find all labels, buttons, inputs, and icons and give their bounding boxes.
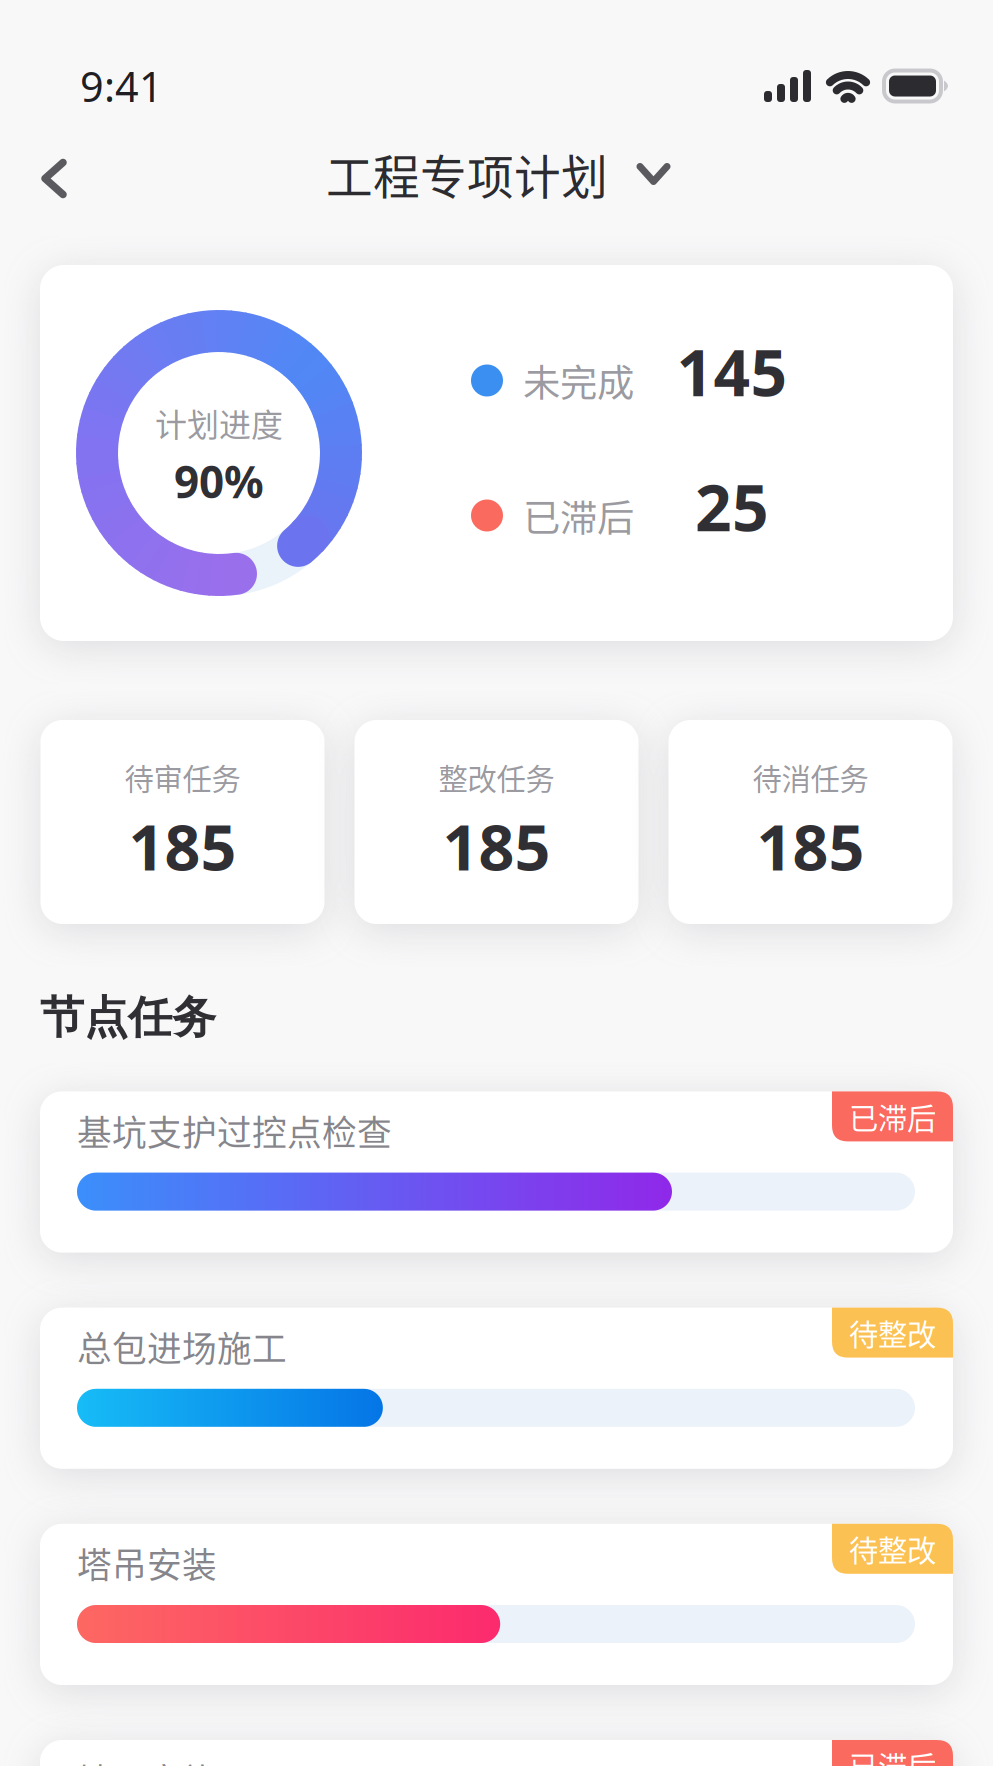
staticText: 地下室施工 [77,1754,252,1766]
staticText: 节点任务 [40,990,216,1045]
staticText: 已滞后 [849,1095,936,1138]
button[interactable]: 基坑支护过控点检查 [40,1091,953,1253]
staticText: 185 [756,804,864,888]
staticText: 145 [676,329,787,414]
button[interactable]: 塔吊安装 [40,1524,953,1685]
staticText: 185 [442,804,550,888]
staticText: 工程专项计划 [326,140,608,208]
staticText: 185 [128,804,236,888]
staticText: 90% [174,452,264,510]
staticText: 基坑支护过控点检查 [77,1105,392,1156]
staticText: 已滞后 [523,488,634,543]
staticText: 待消任务 [752,756,868,798]
button[interactable]: 待消任务 [668,720,952,924]
staticText: 9:41 [80,59,163,113]
staticText: 待审任务 [124,756,240,798]
button[interactable]: 地下室施工 [40,1740,953,1766]
button[interactable]: 整改任务 [354,720,638,924]
staticText: 已滞后 [849,1744,936,1766]
staticText: 待整改 [849,1311,936,1354]
staticText: 计划进度 [155,400,283,446]
staticText: 25 [695,464,769,549]
button[interactable]: 待审任务 [40,720,324,924]
staticText: 整改任务 [438,756,554,798]
button[interactable]: Back [0,141,100,232]
button[interactable]: 工程专项计划 [326,133,667,241]
staticText: 塔吊安装 [77,1538,217,1588]
staticText: 待整改 [849,1528,936,1570]
button[interactable]: 总包进场施工 [40,1308,953,1469]
staticText: 未完成 [523,353,634,408]
staticText: 总包进场施工 [77,1322,287,1372]
